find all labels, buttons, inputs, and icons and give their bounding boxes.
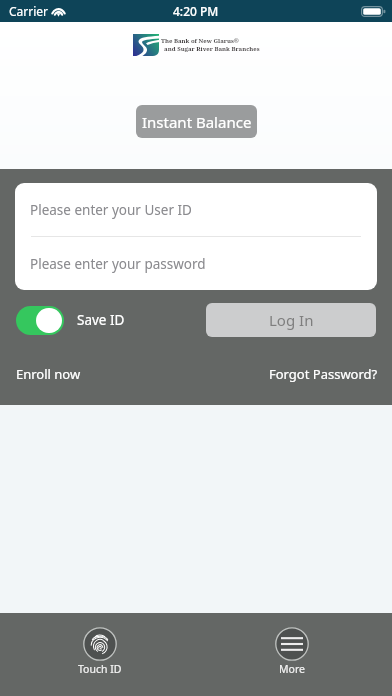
- button[interactable]: Enroll now: [16, 365, 81, 383]
- button[interactable]: Touch ID: [66, 627, 134, 676]
- staticText: Enroll now: [16, 365, 81, 383]
- staticText: Instant Balance: [142, 112, 252, 132]
- button[interactable]: Please enter your password: [15, 237, 377, 290]
- staticText: The Bank of New Glarus®: [161, 37, 239, 45]
- button[interactable]: More: [258, 627, 326, 676]
- staticText: Save ID: [77, 311, 125, 329]
- button[interactable]: Log In: [206, 303, 376, 337]
- staticText: Log In: [269, 310, 314, 330]
- staticText: Touch ID: [78, 662, 122, 676]
- staticText: Please enter your password: [30, 255, 206, 273]
- staticText: 4:20 PM: [173, 3, 219, 19]
- staticText: More: [279, 662, 305, 676]
- staticText: and Sugar River Bank Branches: [161, 45, 260, 53]
- button[interactable]: Save ID toggle: [16, 306, 64, 335]
- button[interactable]: Instant Balance: [136, 105, 257, 138]
- button[interactable]: Please enter your User ID: [15, 183, 377, 236]
- staticText: Forgot Password?: [269, 365, 378, 383]
- staticText: Carrier: [9, 3, 49, 19]
- button[interactable]: Forgot Password?: [269, 365, 378, 383]
- staticText: Please enter your User ID: [30, 201, 192, 219]
